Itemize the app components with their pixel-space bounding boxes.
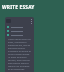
button[interactable]: More options — [30, 19, 33, 24]
staticText: Lorem ipsum dolor sit amet, consectetur … — [8, 38, 32, 72]
button[interactable] — [7, 29, 32, 33]
button[interactable] — [7, 25, 32, 29]
button[interactable] — [7, 33, 32, 37]
staticText: WRITE ESSAY — [2, 4, 35, 11]
